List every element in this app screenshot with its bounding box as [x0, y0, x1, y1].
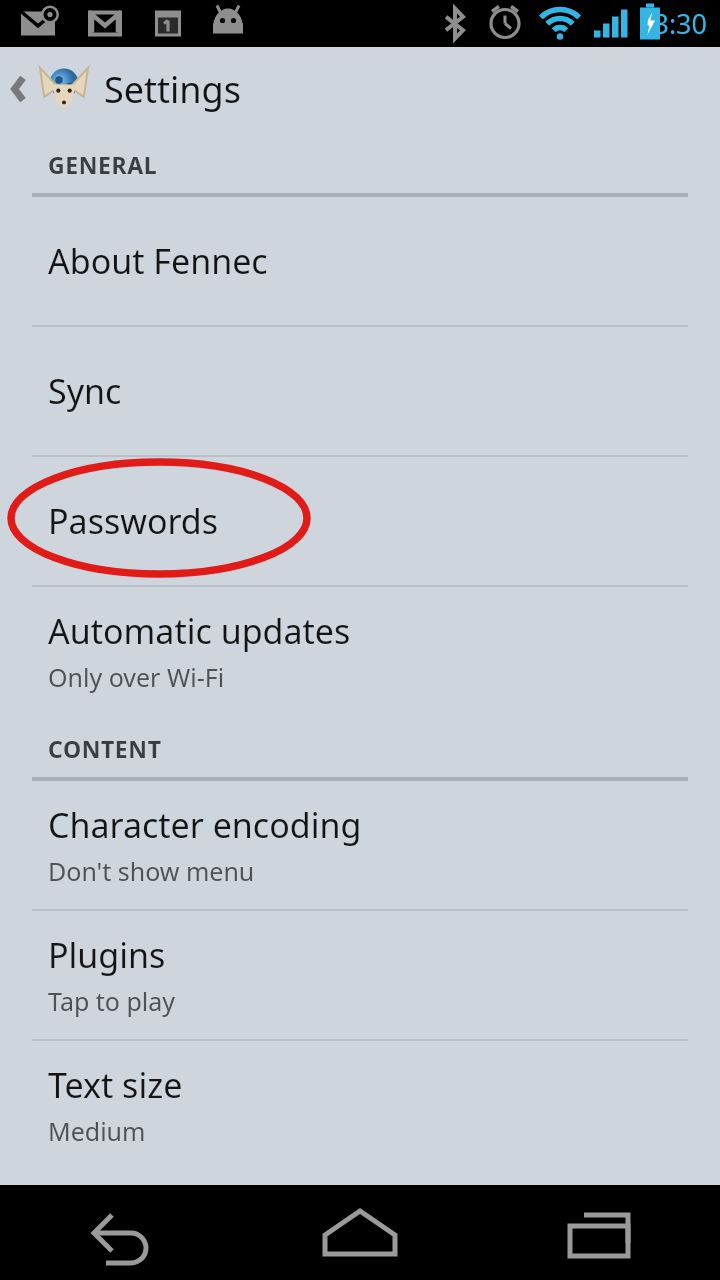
staticText: Automatic updates	[48, 608, 351, 654]
button[interactable]: Back to Settings	[0, 47, 720, 131]
button[interactable]: Passwords	[0, 457, 720, 585]
button[interactable]: Sync	[0, 327, 720, 455]
staticText: 13:30	[638, 5, 708, 42]
staticText: Character encoding	[48, 802, 362, 848]
button[interactable]: Character encoding	[0, 781, 720, 909]
button[interactable]: Automatic updates	[0, 587, 720, 715]
staticText: Only over Wi-Fi	[48, 660, 225, 694]
staticText: Don't show menu	[48, 854, 255, 888]
staticText: Plugins	[48, 932, 166, 978]
button[interactable]: Plugins	[0, 911, 720, 1039]
button[interactable]: Recent apps	[480, 1185, 720, 1280]
button[interactable]: Home	[240, 1185, 480, 1280]
staticText: CONTENT	[48, 733, 162, 764]
staticText: Passwords	[48, 498, 219, 544]
button[interactable]: Back	[0, 1185, 240, 1280]
staticText: Sync	[48, 368, 122, 414]
staticText: Settings	[104, 65, 241, 114]
staticText: About Fennec	[48, 238, 268, 284]
staticText: GENERAL	[48, 149, 158, 180]
staticText: Text size	[48, 1062, 183, 1108]
button[interactable]: About Fennec	[0, 197, 720, 325]
staticText: Medium	[48, 1114, 146, 1148]
button[interactable]: Text size	[0, 1041, 720, 1169]
staticText: Tap to play	[48, 984, 176, 1018]
